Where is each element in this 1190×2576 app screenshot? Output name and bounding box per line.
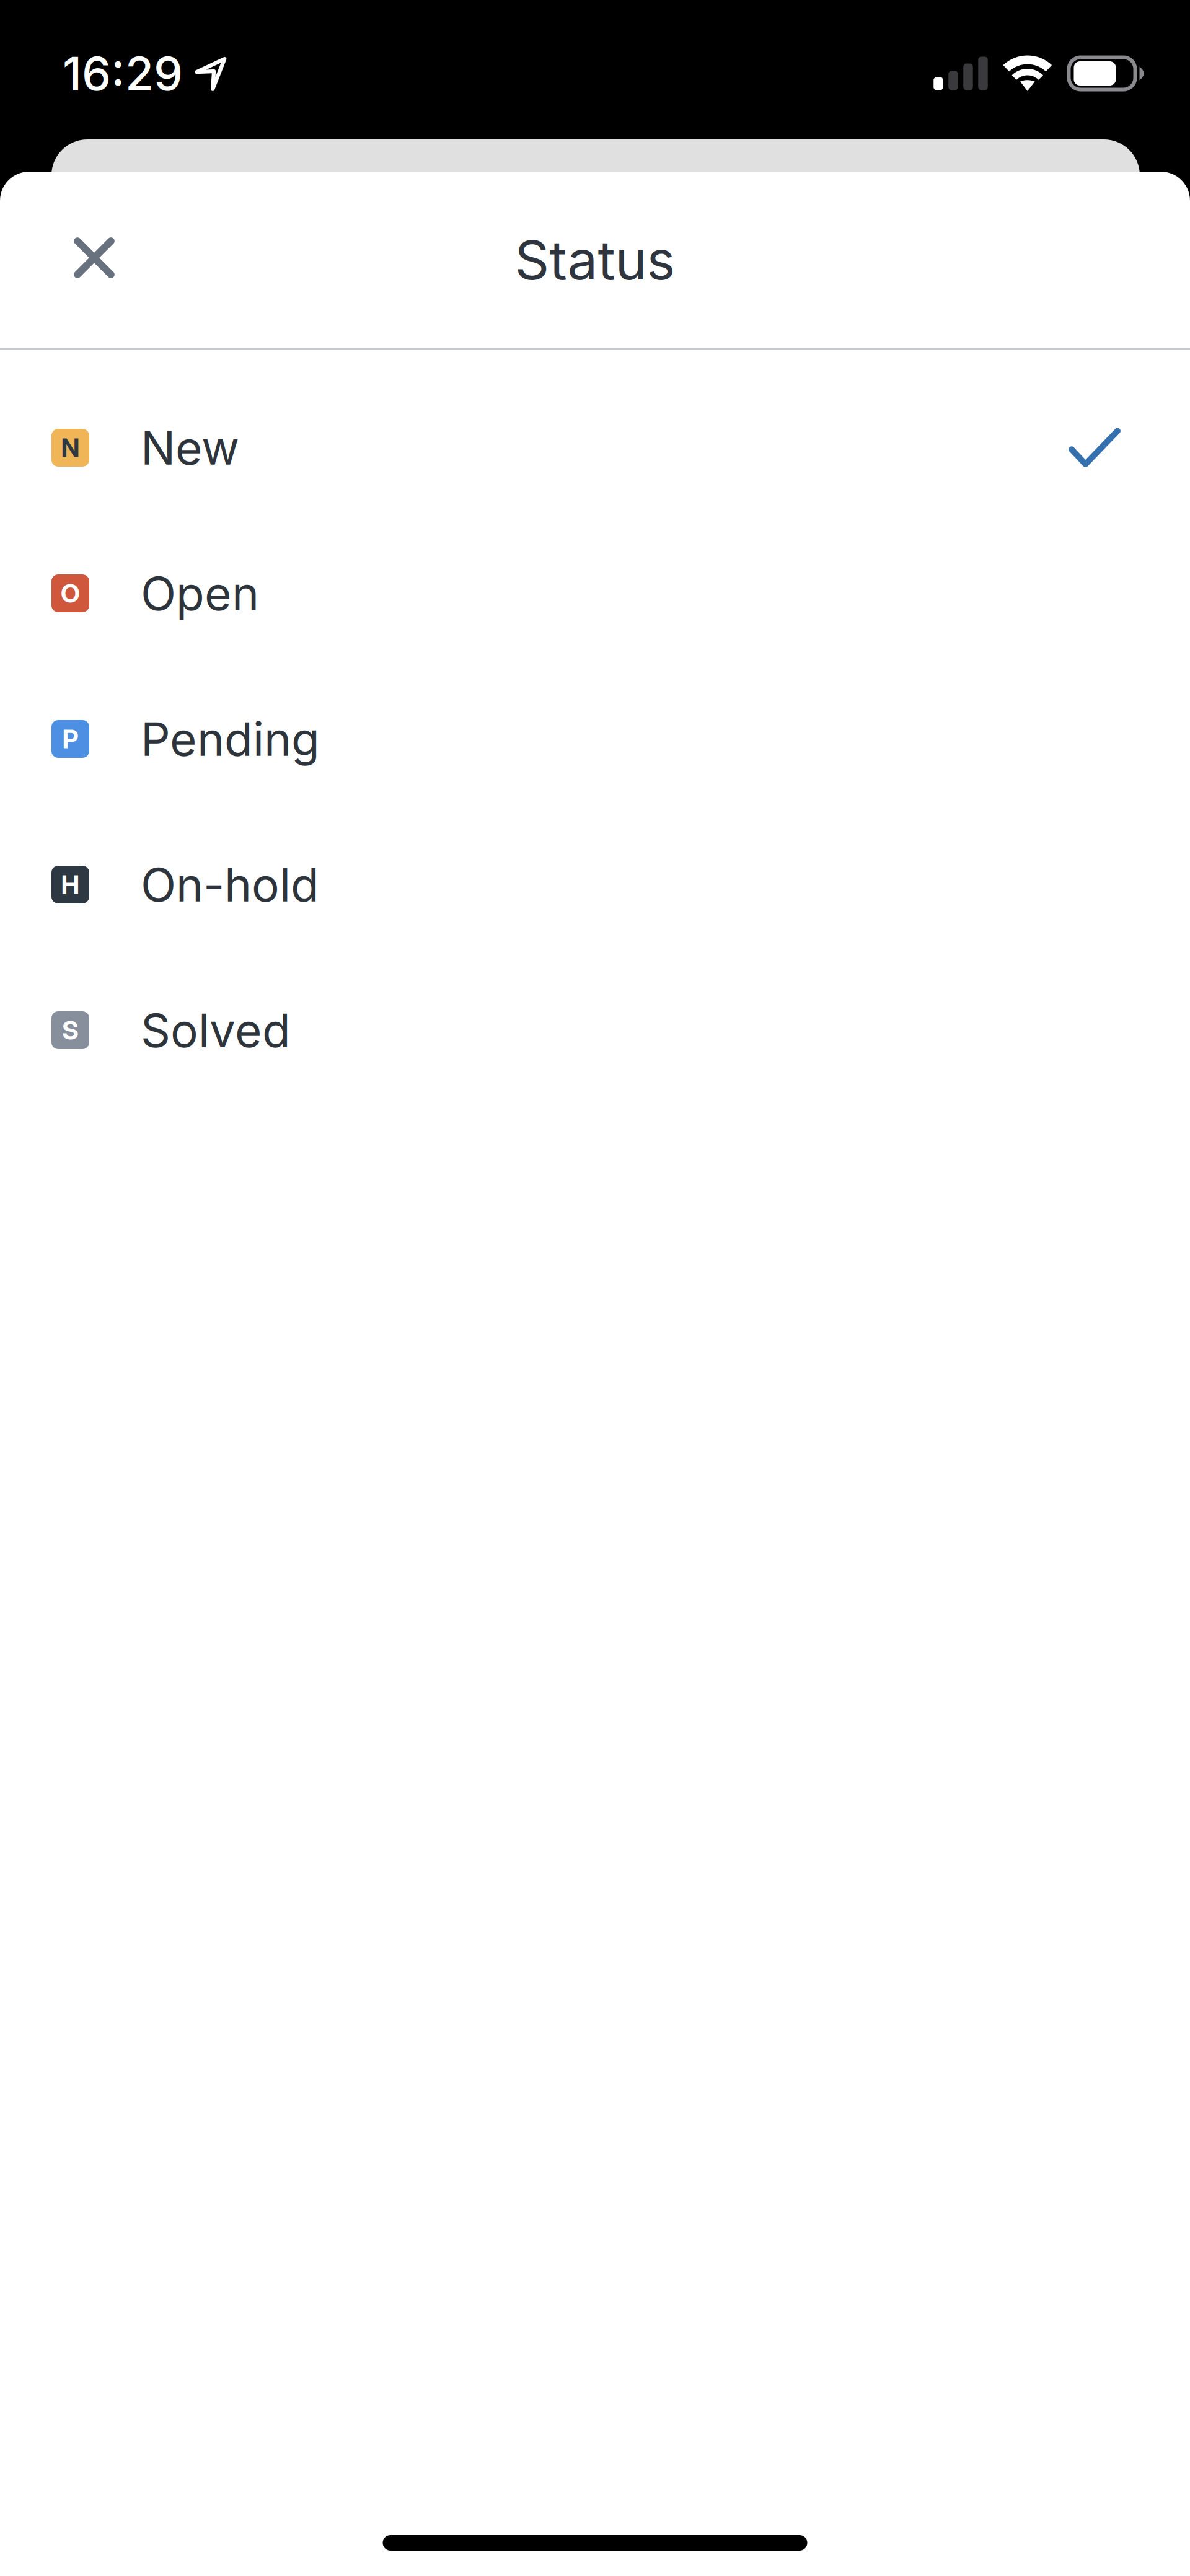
- staticText: New: [141, 420, 239, 476]
- staticText: S: [62, 1015, 79, 1046]
- staticText: H: [61, 869, 80, 900]
- staticText: Open: [141, 565, 259, 621]
- staticText: P: [62, 723, 78, 754]
- staticText: Status: [515, 227, 675, 292]
- staticText: O: [61, 578, 80, 609]
- button[interactable]: S: [0, 957, 1190, 1103]
- staticText: 16:29: [63, 45, 183, 101]
- staticText: On-hold: [141, 857, 319, 913]
- staticText: Pending: [141, 711, 320, 767]
- button[interactable]: O: [0, 521, 1190, 666]
- button[interactable]: N: [0, 375, 1190, 521]
- button[interactable]: P: [0, 666, 1190, 812]
- staticText: N: [61, 432, 80, 463]
- staticText: Solved: [141, 1002, 291, 1058]
- button[interactable]: H: [0, 812, 1190, 957]
- button[interactable]: Close: [0, 172, 130, 348]
